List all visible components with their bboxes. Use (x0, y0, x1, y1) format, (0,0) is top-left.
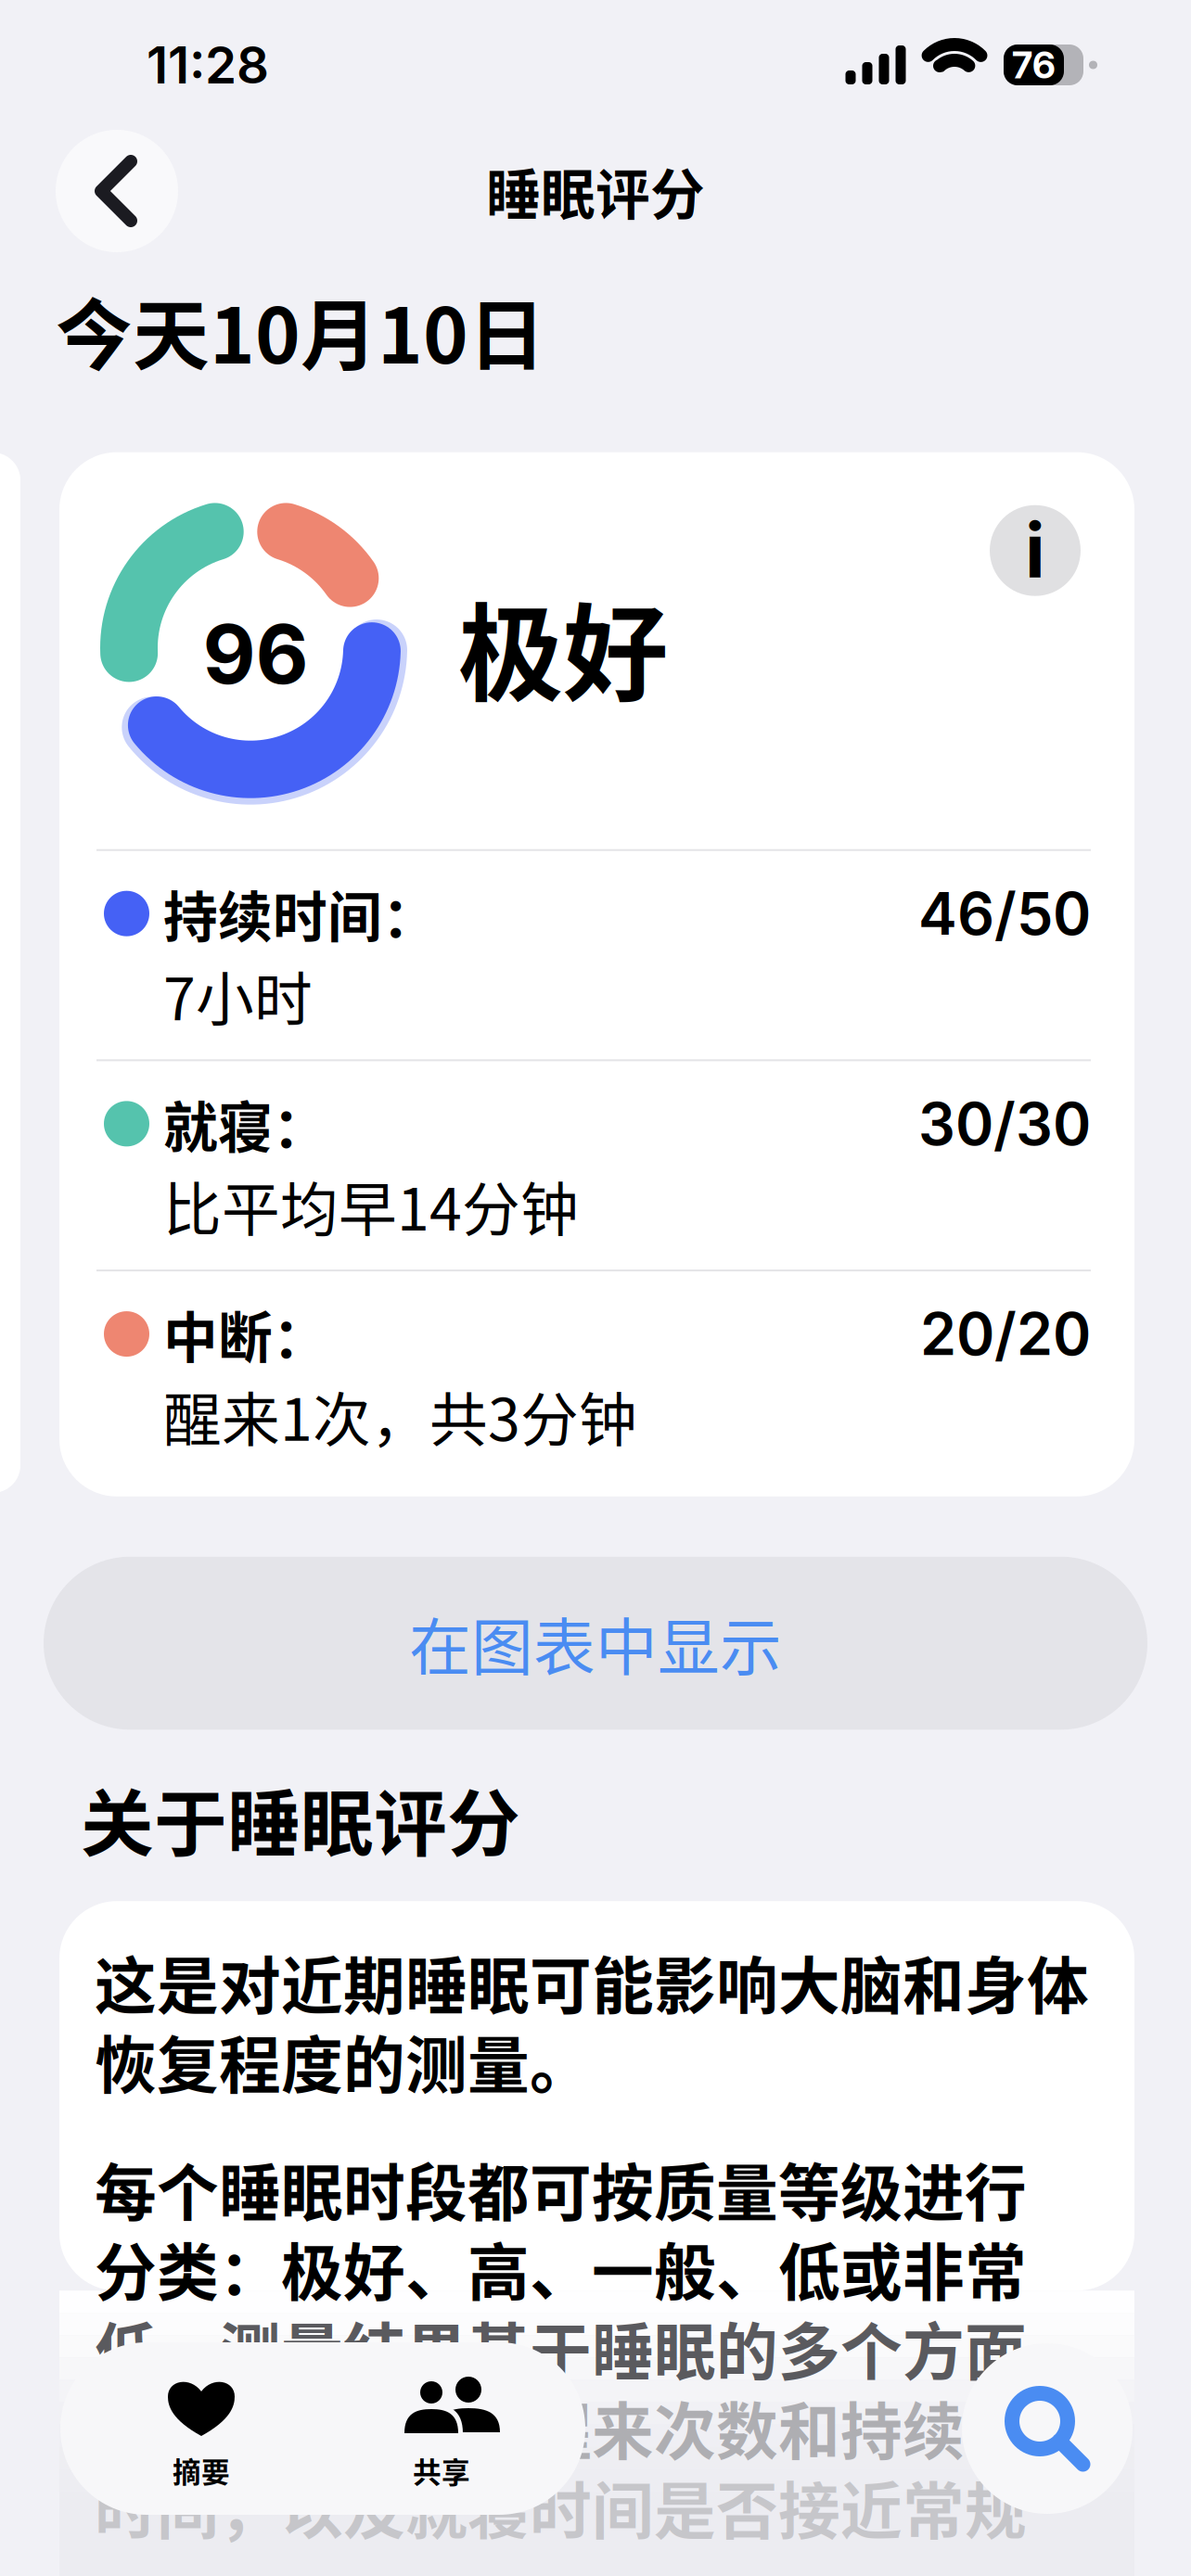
staticText: 每个睡眠时段都可按质量等级进行 (95, 2149, 1027, 2229)
staticText: i (1025, 506, 1045, 595)
button[interactable]: 摘要 (60, 2342, 342, 2515)
staticText: 共享 (413, 2450, 470, 2491)
staticText: 摘要 (173, 2450, 230, 2491)
staticText: 11:28 (147, 34, 269, 96)
staticText: 今天10月10日 (56, 274, 545, 385)
staticText: 这是对近期睡眠可能影响大脑和身体 (95, 1942, 1089, 2021)
staticText: 低。测量结果基于睡眠的多个方面， (95, 2308, 1089, 2388)
staticText: 极好 (458, 570, 668, 722)
staticText: 醒来1次，共3分钟 (163, 1373, 637, 1457)
staticText: 在图表中显示 (409, 1598, 782, 1688)
staticText: 20/20 (920, 1299, 1091, 1369)
staticText: 7小时 (163, 953, 313, 1037)
staticText: 分类：极好、高、一般、低或非常 (95, 2229, 1027, 2308)
staticText: 46/50 (918, 878, 1091, 949)
staticText: 就寝： (163, 1084, 327, 1163)
staticText: 96 (203, 605, 308, 703)
button[interactable]: 在图表中显示 (44, 1557, 1147, 1730)
staticText: 比平均早14分钟 (163, 1163, 579, 1247)
button[interactable]: 搜索 (962, 2343, 1133, 2514)
staticText: 中断： (163, 1295, 327, 1373)
staticText: 30/30 (918, 1089, 1091, 1159)
staticText: 例如整体时长、醒来次数和持续 (95, 2388, 965, 2467)
staticText: 持续时间： (163, 874, 437, 953)
staticText: 时间，以及就寝时间是否接近常规 (95, 2467, 1027, 2547)
button[interactable]: 共享 (342, 2342, 541, 2515)
staticText: 关于睡眠评分 (81, 1766, 520, 1871)
staticText: 睡眠评分 (486, 152, 705, 230)
staticText: 76 (1012, 42, 1056, 87)
staticText: 恢复程度的测量。 (95, 2021, 592, 2101)
button[interactable]: 信息 (990, 505, 1081, 596)
button[interactable]: 返回 (56, 130, 178, 252)
